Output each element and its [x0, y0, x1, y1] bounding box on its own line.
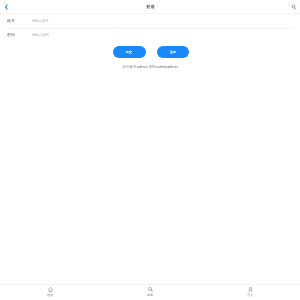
staticText: 请输入账号 — [32, 19, 49, 23]
button[interactable]: 账号 — [0, 14, 300, 27]
staticText: 请输入密码 — [32, 33, 49, 37]
staticText: 个人 — [247, 293, 254, 297]
staticText: 搜索 — [147, 293, 154, 297]
button[interactable]: Search — [287, 0, 300, 13]
button[interactable]: 首页 — [0, 285, 100, 300]
staticText: 演示账号 admin 密码 adminadmin — [122, 64, 178, 69]
button[interactable]: 密码 — [0, 28, 300, 41]
button[interactable]: 注册 — [157, 46, 189, 58]
button[interactable]: 提交 — [113, 46, 146, 58]
button[interactable]: 搜索 — [100, 285, 200, 300]
staticText: 登录 — [146, 4, 155, 10]
button[interactable]: 个人 — [200, 285, 300, 300]
staticText: 首页 — [47, 293, 54, 297]
staticText: 账号 — [7, 18, 15, 23]
staticText: 提交 — [126, 50, 133, 54]
staticText: 注册 — [170, 50, 177, 54]
button[interactable]: Back — [0, 0, 13, 13]
staticText: 密码 — [7, 32, 15, 37]
